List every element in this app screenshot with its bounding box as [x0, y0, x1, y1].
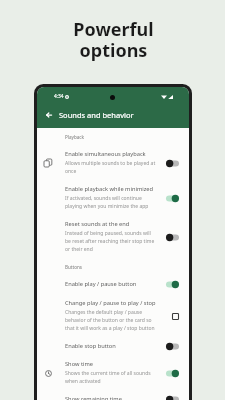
staticText: Buttons — [65, 264, 82, 270]
button[interactable]: Enable stop button — [37, 332, 189, 350]
button[interactable]: Enable playback while minimized — [37, 175, 189, 210]
staticText: Enable play / pause button — [65, 280, 137, 288]
button[interactable]: Checkbox — [161, 309, 179, 323]
staticText: Enable simultaneous playback — [65, 150, 146, 158]
button[interactable]: Toggle on — [161, 277, 179, 291]
staticText: Sounds and behavior — [59, 110, 134, 120]
staticText: Powerful options — [73, 17, 154, 63]
button[interactable]: Enable simultaneous playback — [37, 140, 189, 175]
staticText: Playback — [65, 134, 84, 140]
staticText: 4:34 — [54, 93, 64, 100]
button[interactable]: Show remaining time — [37, 385, 189, 400]
staticText: Show time — [65, 360, 93, 368]
staticText: Enable playback while minimized — [65, 185, 154, 193]
button[interactable]: Enable play / pause button — [37, 270, 189, 288]
staticText: Reset sounds at the end — [65, 220, 130, 228]
button[interactable]: Change play / pause to play / stop — [37, 288, 189, 332]
button[interactable]: Toggle off — [161, 156, 179, 170]
staticText: Show remaining time — [65, 395, 122, 400]
button[interactable]: Show time — [37, 350, 189, 385]
button[interactable]: Toggle off — [161, 230, 179, 244]
button[interactable]: Toggle off — [161, 339, 179, 353]
button[interactable]: Toggle on — [161, 366, 179, 380]
button[interactable]: Reset sounds at the end — [37, 210, 189, 253]
staticText: Changes the default play / pause behavio… — [65, 309, 157, 332]
staticText: Allows multiple sounds to be played at o… — [65, 160, 157, 175]
button[interactable]: Back — [42, 108, 55, 121]
staticText: Shows the current time of all sounds whe… — [65, 370, 157, 385]
staticText: Instead of being paused, sounds will be … — [65, 230, 157, 253]
staticText: If activated, sounds will continue playi… — [65, 195, 157, 210]
button[interactable]: Toggle on — [161, 191, 179, 205]
staticText: Enable stop button — [65, 342, 116, 350]
staticText: Change play / pause to play / stop — [65, 299, 156, 307]
button[interactable]: Toggle off — [161, 392, 179, 400]
